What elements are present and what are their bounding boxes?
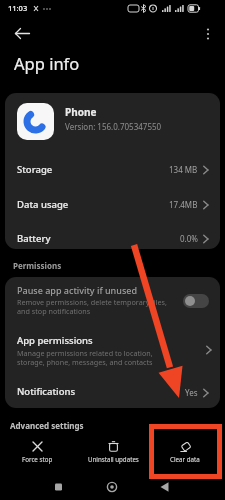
button[interactable]: Data usage: [5, 188, 220, 221]
staticText: Data usage: [17, 198, 69, 211]
staticText: Notifications: [17, 385, 76, 398]
staticText: App info: [14, 52, 80, 74]
staticText: App permissions: [17, 334, 93, 347]
staticText: 17.4MB: [169, 199, 198, 210]
staticText: Remove permissions, delete temporary fil…: [17, 297, 167, 317]
button[interactable]: [8, 22, 38, 46]
staticText: Manage permissions related to location, …: [17, 348, 153, 368]
button[interactable]: Storage: [5, 153, 220, 186]
button[interactable]: Notifications: [5, 377, 220, 408]
staticText: Permissions: [13, 260, 62, 271]
staticText: 11:03: [8, 3, 28, 13]
button[interactable]: Clear data: [152, 441, 218, 469]
button[interactable]: App permissions: [5, 329, 220, 372]
staticText: Pause app activity if unused: [17, 284, 137, 296]
button[interactable]: Uninstall updates: [80, 441, 146, 469]
button[interactable]: Battery: [5, 222, 220, 249]
button[interactable]: [198, 24, 218, 44]
button[interactable]: Pause app activity if unused: [5, 277, 220, 324]
staticText: Yes: [185, 387, 198, 398]
staticText: 0.0%: [180, 233, 198, 244]
button[interactable]: [183, 294, 209, 308]
staticText: Battery: [17, 232, 51, 245]
staticText: Uninstall updates: [88, 455, 139, 463]
staticText: Storage: [17, 163, 53, 176]
button[interactable]: Force stop: [4, 441, 70, 469]
staticText: Advanced settings: [10, 420, 84, 431]
staticText: Force stop: [22, 455, 53, 463]
staticText: Clear data: [170, 455, 200, 463]
staticText: Version: 156.0.705347550: [65, 121, 162, 132]
staticText: Phone: [65, 105, 97, 119]
staticText: 134 MB: [169, 164, 198, 175]
